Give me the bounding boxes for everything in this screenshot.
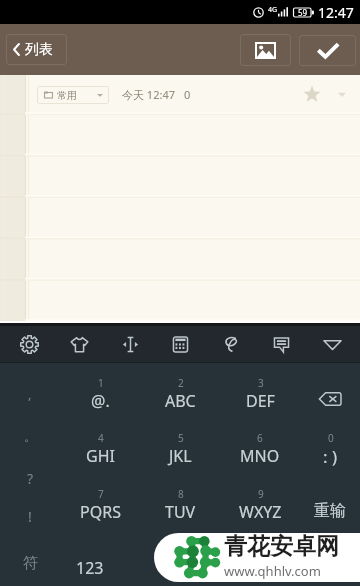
button[interactable]: Theme [57, 326, 101, 362]
button[interactable]: Done [299, 35, 356, 66]
button[interactable] [220, 530, 300, 586]
staticText: 0 [184, 87, 191, 102]
button[interactable]: 重输 [300, 474, 360, 530]
staticText: 0 [328, 431, 334, 445]
button[interactable]: ? [0, 456, 60, 500]
staticText: ! [28, 507, 32, 526]
button[interactable]: 7 [60, 474, 140, 530]
staticText: 常用 [57, 89, 77, 102]
button[interactable]: 123 [60, 530, 140, 586]
staticText: 8 [178, 487, 184, 501]
button[interactable]: 6 [220, 418, 300, 474]
button[interactable]: More options [332, 83, 352, 105]
staticText: , [28, 385, 32, 403]
staticText: ? [27, 469, 34, 488]
button[interactable]: 3 [220, 363, 300, 418]
staticText: @. [91, 390, 110, 412]
button[interactable]: Settings [7, 326, 51, 362]
button[interactable]: 8 [140, 474, 220, 530]
staticText: 59 [298, 7, 308, 18]
staticText: WXYZ [239, 501, 282, 523]
button[interactable] [300, 530, 360, 586]
button[interactable]: 2 [140, 363, 220, 418]
staticText: TUV [165, 501, 196, 523]
staticText: 符 [23, 554, 38, 573]
staticText: www.qhhlv.com [224, 562, 321, 580]
button[interactable]: Move cursor [108, 326, 152, 362]
staticText: 4 [98, 431, 104, 445]
button[interactable]: Favorite [301, 83, 323, 105]
staticText: 。 [24, 428, 37, 444]
staticText: 9 [258, 487, 264, 501]
staticText: 列表 [25, 41, 53, 59]
staticText: JKL [169, 445, 192, 467]
button[interactable]: 列表 [6, 34, 67, 65]
staticText: 7 [98, 487, 104, 501]
button[interactable]: 5 [140, 418, 220, 474]
button[interactable]: Insert image [240, 34, 291, 66]
button[interactable] [300, 363, 360, 418]
button[interactable]: 符 [0, 541, 60, 585]
staticText: DEF [246, 390, 275, 412]
button[interactable]: 1 [60, 363, 140, 418]
button[interactable]: 常用 [37, 86, 109, 104]
staticText: 4G [268, 5, 278, 15]
staticText: PQRS [80, 501, 121, 523]
button[interactable]: 0 [300, 418, 360, 474]
button[interactable]: Hide keyboard [310, 326, 354, 362]
staticText: 12:47 [318, 3, 354, 22]
staticText: 123 [76, 557, 104, 579]
staticText: 6 [257, 431, 263, 445]
staticText: ABC [165, 390, 196, 412]
staticText: 3 [258, 376, 264, 390]
staticText: 1 [98, 376, 104, 390]
staticText: 2 [178, 376, 184, 390]
staticText: : ) [323, 445, 338, 468]
staticText: MNO [240, 445, 280, 467]
button[interactable]: 9 [220, 474, 300, 530]
button[interactable]: 4 [60, 418, 140, 474]
button[interactable]: Handwriting [209, 326, 253, 362]
staticText: 今天 12:47 [122, 87, 175, 102]
button[interactable]: Messages [259, 326, 303, 362]
staticText: 5 [178, 431, 184, 445]
button[interactable]: Keypad layout [158, 326, 202, 362]
staticText: GHI [86, 445, 115, 467]
button[interactable]: ! [0, 494, 60, 538]
staticText: 青花安卓网 [224, 533, 339, 561]
button[interactable] [140, 530, 220, 586]
staticText: 重输 [314, 501, 346, 521]
